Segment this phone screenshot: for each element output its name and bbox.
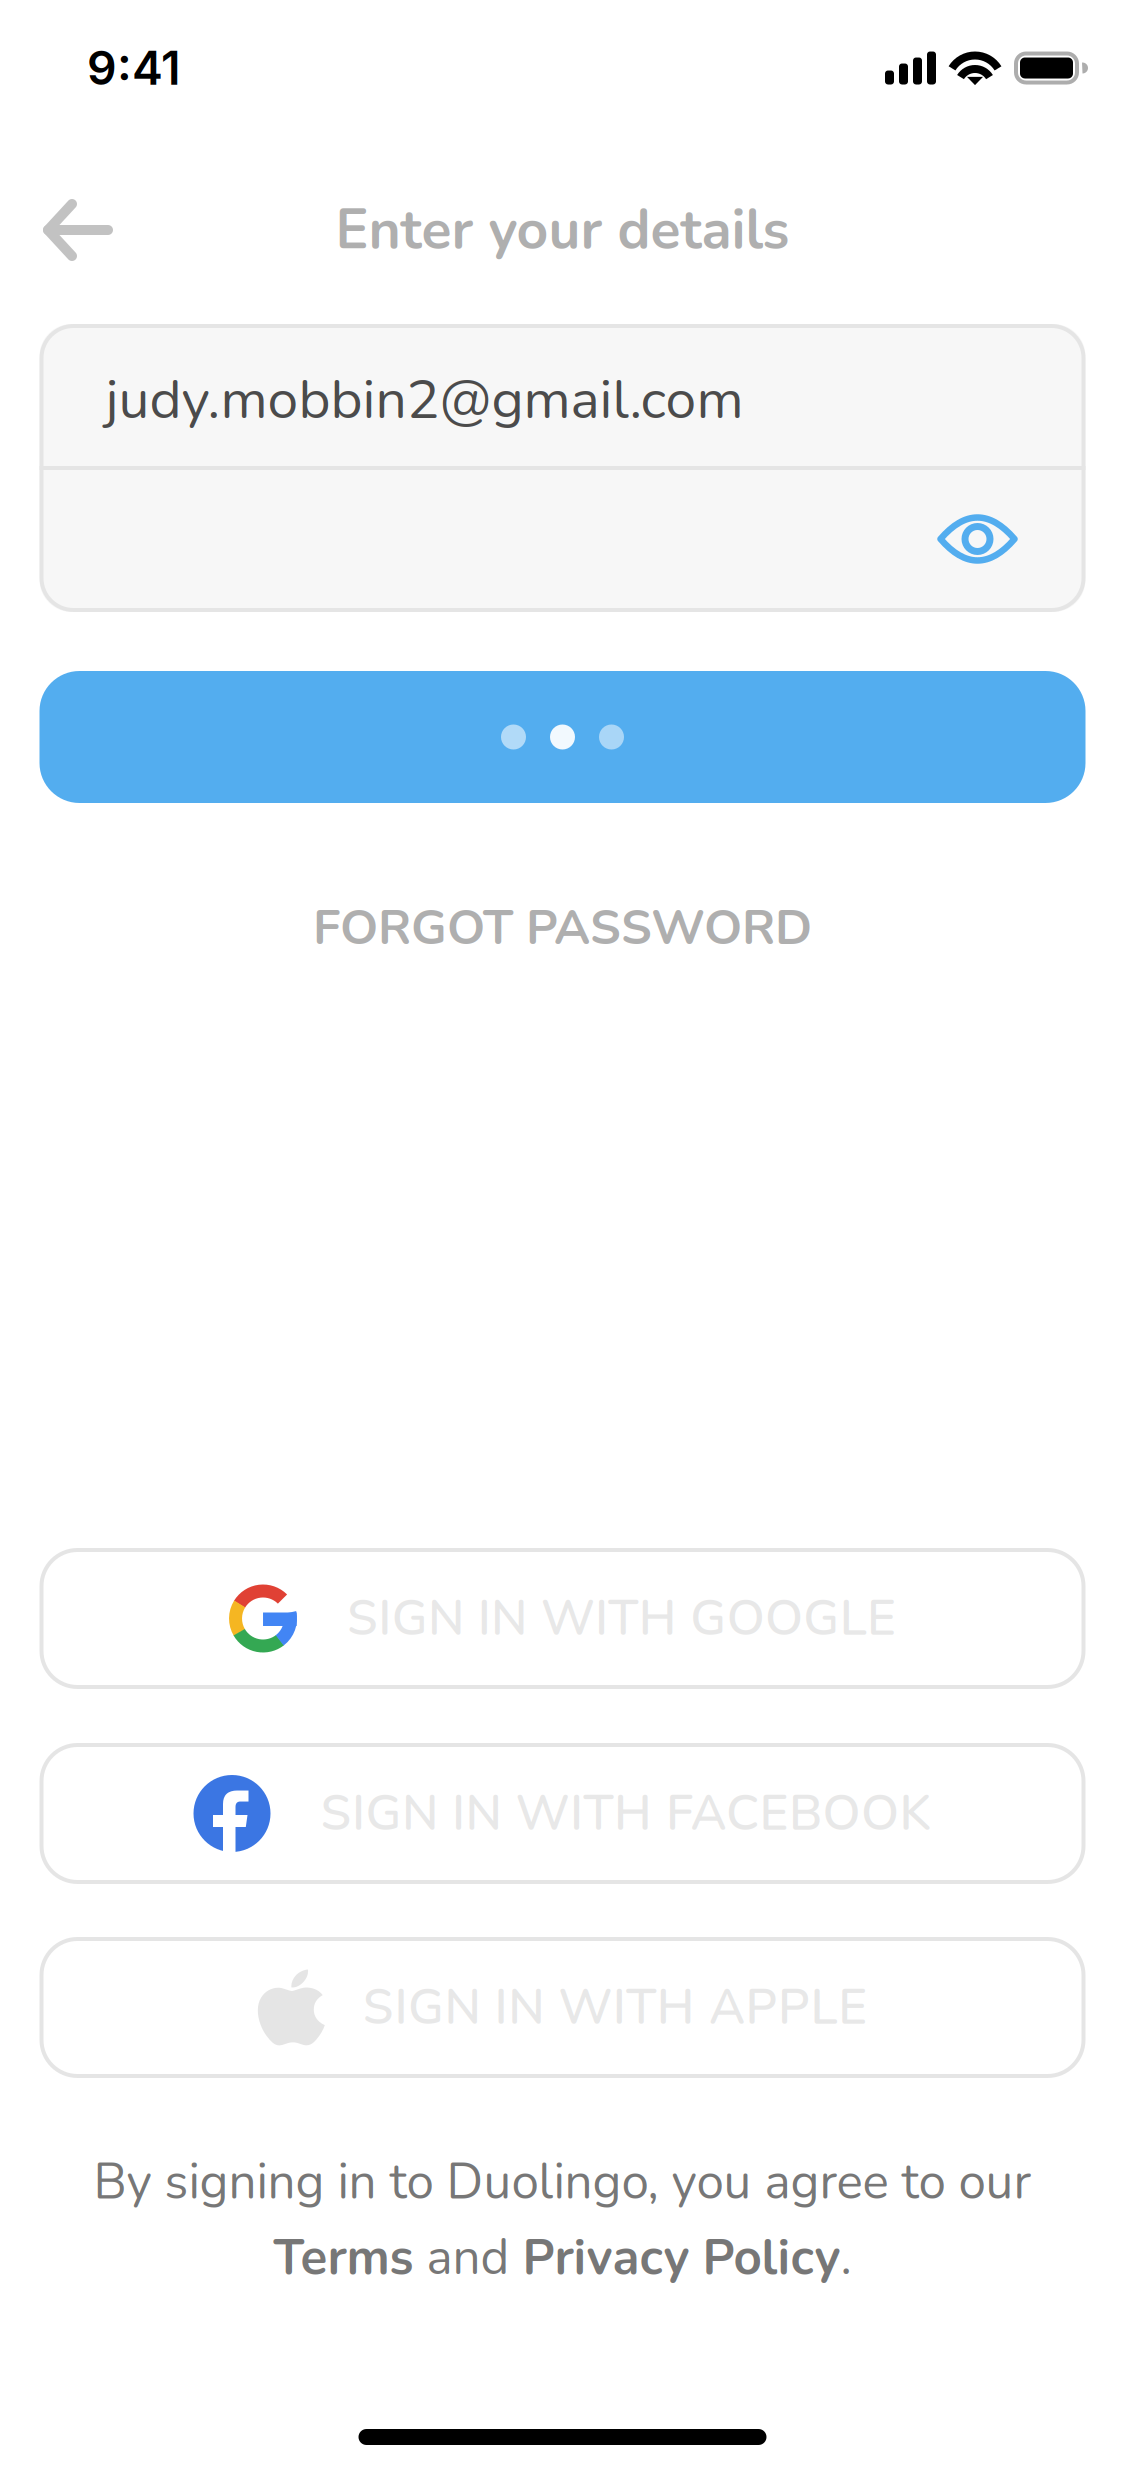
button[interactable]: Terms: [273, 2224, 413, 2291]
staticText: .: [840, 2224, 851, 2291]
staticText: By signing in to Duolingo, you agree to …: [93, 2149, 1031, 2216]
button[interactable]: Sign in: [39, 671, 1085, 803]
button[interactable]: Show password: [917, 496, 1037, 585]
staticText: Terms: [273, 2224, 413, 2291]
staticText: Privacy Policy: [522, 2224, 840, 2291]
staticText: 9:41: [87, 40, 181, 96]
staticText: SIGN IN WITH GOOGLE: [347, 1585, 896, 1652]
staticText: and: [413, 2224, 522, 2291]
button[interactable]: Privacy Policy: [522, 2224, 840, 2291]
staticText: Enter your details: [335, 192, 789, 268]
staticText: judy.mobbin2@gmail.com: [105, 362, 743, 437]
button[interactable]: SIGN IN WITH APPLE: [39, 1937, 1085, 2078]
staticText: SIGN IN WITH APPLE: [363, 1974, 867, 2041]
button[interactable]: Back: [0, 173, 143, 287]
staticText: FORGOT PASSWORD: [313, 895, 812, 961]
button[interactable]: SIGN IN WITH FACEBOOK: [39, 1743, 1085, 1884]
button[interactable]: FORGOT PASSWORD: [39, 803, 1085, 1047]
button[interactable]: SIGN IN WITH GOOGLE: [39, 1548, 1085, 1689]
staticText: SIGN IN WITH FACEBOOK: [320, 1780, 931, 1847]
